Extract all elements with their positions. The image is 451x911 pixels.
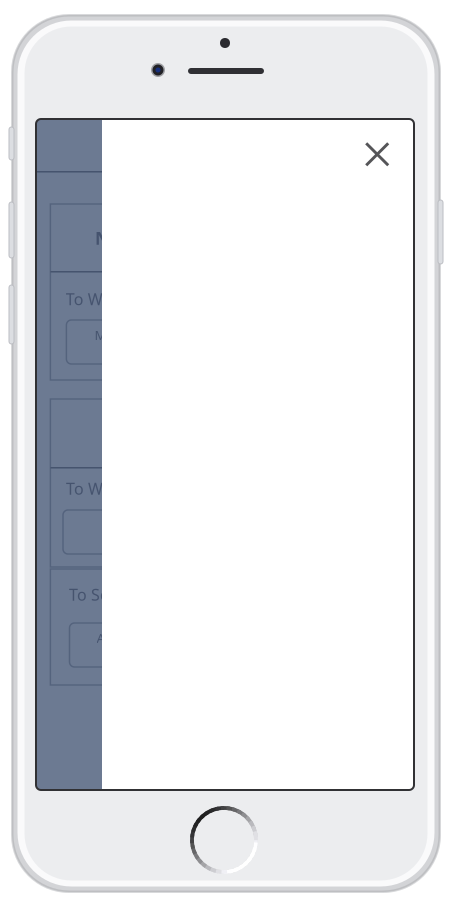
staticText: To Whom It May Concern [66, 288, 257, 310]
staticText: All [96, 629, 111, 647]
button[interactable] [63, 510, 323, 554]
button[interactable]: Close [355, 132, 399, 176]
button[interactable]: Manager [66, 320, 316, 364]
staticText: Manager [94, 326, 150, 344]
staticText: To Send Later [69, 584, 172, 605]
staticText: To Whom It May Concern [66, 478, 257, 499]
button[interactable]: All [69, 623, 304, 667]
staticText: New Message [95, 226, 214, 249]
